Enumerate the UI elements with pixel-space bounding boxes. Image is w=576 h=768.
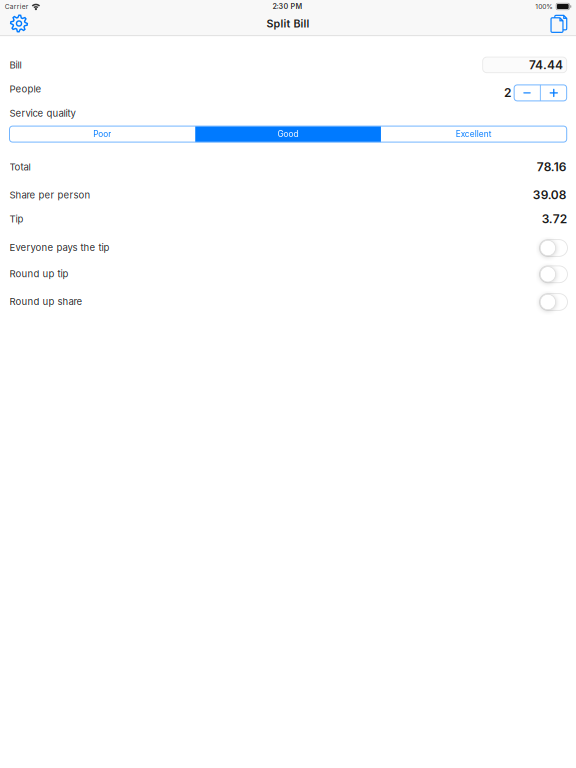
- button[interactable]: Round up tip: [539, 266, 567, 283]
- button[interactable]: Excellent: [381, 126, 567, 142]
- staticText: Bill: [9, 59, 21, 71]
- staticText: Total: [9, 161, 30, 173]
- staticText: 2: [504, 85, 511, 100]
- staticText: People: [9, 83, 41, 95]
- button[interactable]: Settings: [3, 12, 35, 34]
- staticText: 78.16: [537, 160, 567, 174]
- button[interactable]: Good: [195, 126, 381, 142]
- staticText: Carrier: [5, 2, 29, 11]
- staticText: Round up share: [9, 296, 82, 307]
- button[interactable]: Poor: [9, 126, 195, 142]
- staticText: 100%: [535, 2, 553, 11]
- staticText: Excellent: [456, 129, 492, 139]
- staticText: Tip: [9, 213, 23, 225]
- staticText: Poor: [93, 129, 111, 139]
- button[interactable]: Decrease number of people: [514, 85, 540, 101]
- staticText: Split Bill: [266, 17, 309, 30]
- staticText: 74.44: [529, 58, 563, 72]
- staticText: 2:30 PM: [272, 2, 302, 11]
- staticText: Round up tip: [9, 268, 68, 279]
- staticText: Share per person: [9, 189, 90, 201]
- staticText: Good: [278, 129, 299, 139]
- staticText: Everyone pays the tip: [9, 242, 109, 253]
- staticText: 3.72: [542, 212, 567, 226]
- staticText: 39.08: [533, 188, 567, 202]
- staticText: Service quality: [9, 107, 75, 119]
- button[interactable]: Increase number of people: [541, 85, 567, 101]
- button[interactable]: Round up share: [539, 294, 567, 310]
- button[interactable]: Everyone pays the tip: [539, 240, 567, 256]
- button[interactable]: Copy totals: [541, 12, 573, 34]
